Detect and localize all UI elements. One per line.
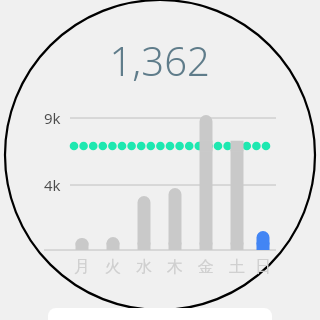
button[interactable]: Weekly step chart, 1,362 steps [0,0,320,320]
